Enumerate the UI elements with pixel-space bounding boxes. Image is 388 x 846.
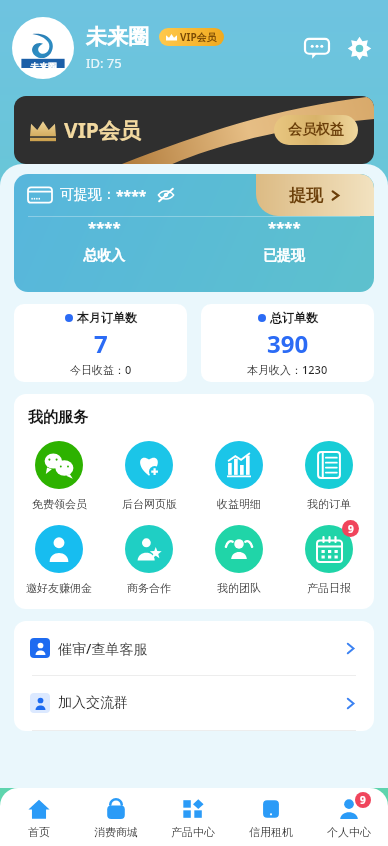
staticText: **** [268,217,301,237]
staticText: 7 [94,327,108,360]
staticText: 9 [348,522,354,536]
button[interactable]: VIP会员 [159,28,224,46]
staticText: 商务合作 [127,581,171,595]
button[interactable]: Messages [300,31,334,65]
button[interactable]: 收益明细 [194,441,284,511]
staticText: 未来圈 [30,61,57,72]
staticText: 今日收益：0 [70,362,132,377]
staticText: 我的服务 [28,408,88,427]
staticText: ID: 75 [86,54,122,72]
button[interactable]: 邀好友赚佣金 [14,525,104,595]
button[interactable]: 免费领会员 [14,441,104,511]
button[interactable]: 消费商城 [77,788,154,846]
button[interactable]: 加入交流群 [14,676,374,730]
button[interactable]: 催审/查单客服 [14,621,374,675]
staticText: 本月订单数 [77,310,137,325]
button[interactable]: 我的订单 [284,441,374,511]
button[interactable]: **** [194,217,374,265]
button[interactable]: 9 [310,788,388,846]
staticText: 9 [360,793,366,807]
button[interactable]: 产品中心 [154,788,232,846]
staticText: 后台网页版 [122,497,177,511]
staticText: 总订单数 [270,310,318,325]
button[interactable]: 信用租机 [232,788,310,846]
staticText: 我的订单 [307,497,351,511]
staticText: **** [88,217,121,237]
staticText: 邀好友赚佣金 [26,581,92,595]
staticText: 消费商城 [94,825,138,839]
staticText: 信用租机 [249,825,293,839]
staticText: **** [116,186,147,205]
staticText: 免费领会员 [32,497,87,511]
button[interactable]: 提现 [14,174,374,292]
button[interactable]: VIP会员 [14,96,374,164]
staticText: 我的团队 [217,581,261,595]
staticText: 提现 [289,185,323,206]
staticText: VIP会员 [64,116,141,145]
button[interactable]: 会员权益 [274,115,358,145]
button[interactable]: 本月订单数 [14,304,187,382]
staticText: 会员权益 [288,121,344,139]
staticText: 未来圈 [86,24,149,50]
button[interactable]: 首页 [0,788,77,846]
button[interactable]: 总订单数 [201,304,374,382]
staticText: 产品中心 [171,825,215,839]
button[interactable]: 后台网页版 [104,441,194,511]
button[interactable]: Settings [342,31,376,65]
staticText: VIP会员 [180,30,217,44]
button[interactable]: **** [14,217,194,265]
staticText: 产品日报 [307,581,351,595]
staticText: 加入交流群 [58,694,128,712]
staticText: 总收入 [83,247,125,265]
button[interactable]: Profile avatar [12,17,74,79]
staticText: 催审/查单客服 [58,639,148,658]
staticText: 收益明细 [217,497,261,511]
staticText: 本月收入：1230 [247,362,328,377]
staticText: 个人中心 [327,825,371,839]
staticText: 可提现： [60,186,116,204]
staticText: 已提现 [263,247,305,265]
staticText: 首页 [28,825,50,839]
button[interactable]: 商务合作 [104,525,194,595]
staticText: 390 [267,327,309,360]
button[interactable]: 提现 [256,174,374,216]
button[interactable]: 我的团队 [194,525,284,595]
button[interactable]: 9 [284,525,374,595]
button[interactable] [157,186,175,204]
